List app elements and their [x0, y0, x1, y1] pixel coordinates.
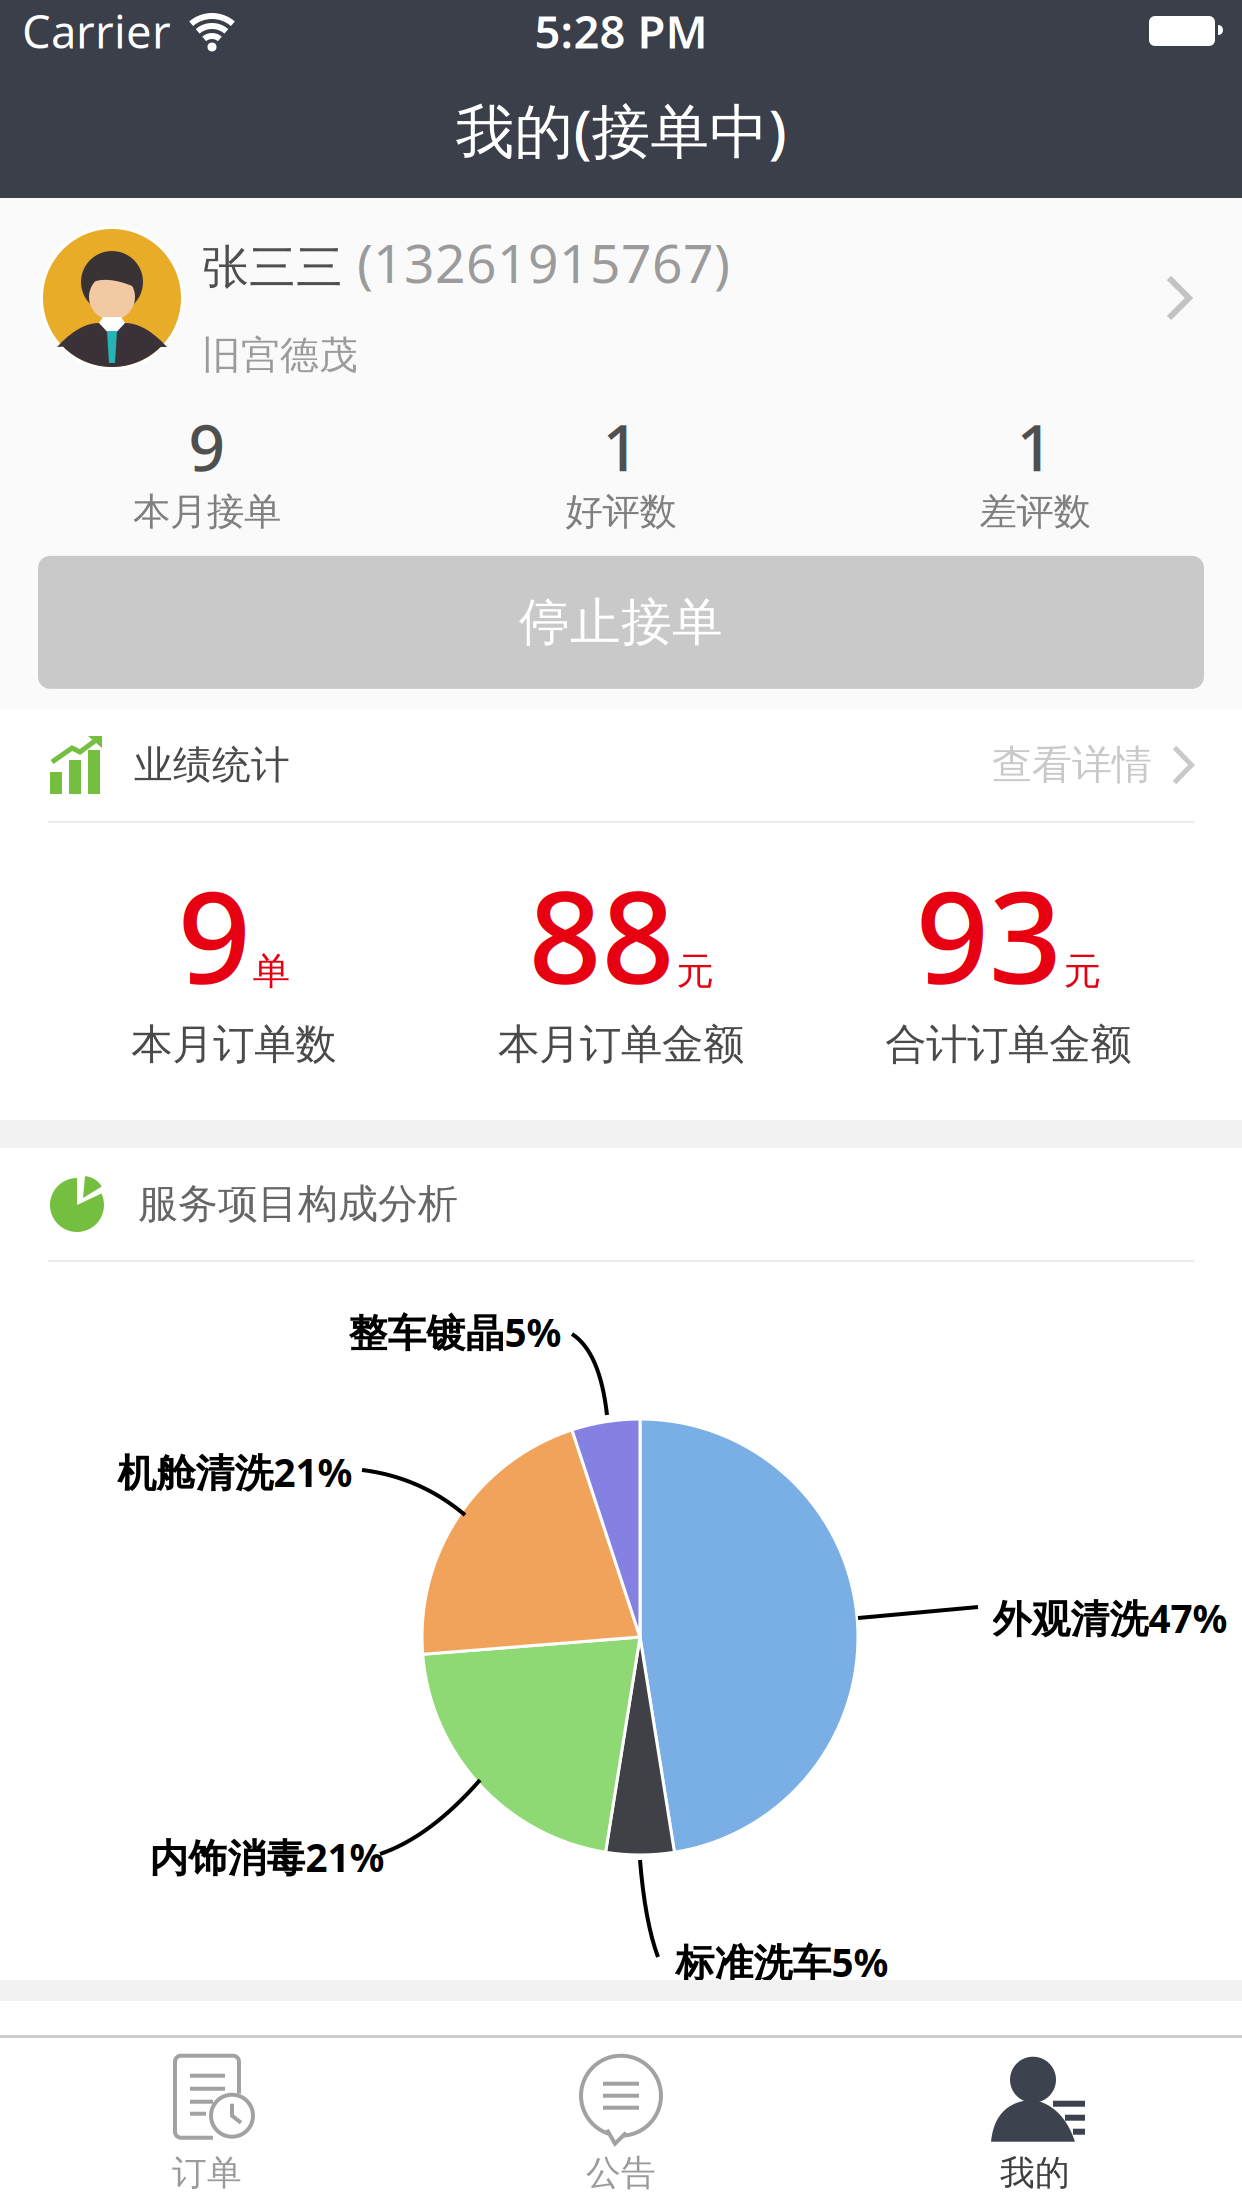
staticText: 公告	[586, 2152, 656, 2194]
button[interactable]: 张三三	[0, 198, 1242, 398]
staticText: 我的(接单中)	[455, 91, 786, 169]
staticText: 停止接单	[519, 591, 723, 653]
staticText: 1	[602, 404, 639, 489]
staticText: (13261915767)	[357, 227, 730, 298]
staticText: 服务项目构成分析	[138, 1179, 458, 1228]
staticText: 差评数	[979, 489, 1090, 535]
staticText: 合计订单金额	[885, 1019, 1131, 1070]
staticText: 本月订单金额	[498, 1019, 744, 1070]
staticText: 9	[178, 849, 251, 1019]
staticText: Carrier	[22, 1, 171, 61]
staticText: 订单	[172, 2152, 242, 2194]
staticText: 标准洗车5%	[675, 1936, 888, 1988]
staticText: 整车镀晶5%	[348, 1306, 561, 1358]
button[interactable]: 我的	[828, 2054, 1242, 2194]
staticText: 单	[253, 948, 290, 994]
staticText: 9	[188, 404, 225, 489]
staticText: 1	[1016, 404, 1053, 489]
staticText: 元	[1064, 948, 1101, 994]
button[interactable]: 公告	[414, 2054, 828, 2194]
staticText: 机舱清洗21%	[117, 1446, 352, 1498]
staticText: 元	[676, 948, 713, 994]
staticText: 查看详情	[992, 740, 1152, 789]
button[interactable]: 订单	[0, 2054, 414, 2194]
staticText: 好评数	[565, 489, 676, 535]
staticText: 本月接单	[133, 489, 281, 535]
staticText: 业绩统计	[134, 741, 290, 789]
staticText: 我的	[1000, 2152, 1070, 2194]
staticText: 外观清洗47%	[992, 1592, 1227, 1644]
staticText: 93	[916, 849, 1062, 1019]
staticText: 5:28 PM	[534, 1, 707, 61]
staticText: 张三三	[202, 239, 343, 296]
staticText: 内饰消毒21%	[149, 1831, 384, 1883]
staticText: 88	[528, 849, 674, 1019]
button[interactable]: 停止接单	[0, 556, 1242, 689]
button[interactable]: 业绩统计	[0, 709, 1242, 821]
staticText: 本月订单数	[131, 1019, 336, 1070]
staticText: 旧宫德茂	[202, 332, 358, 379]
